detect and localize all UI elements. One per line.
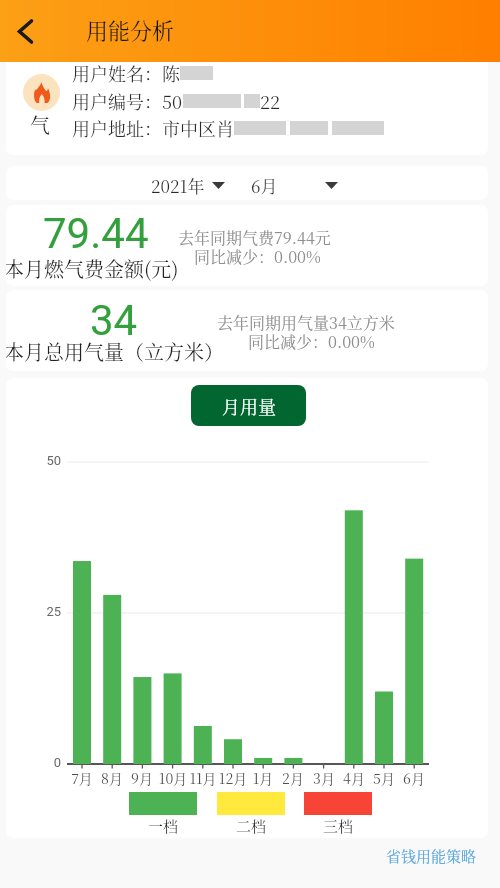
staticText: 月用量	[222, 393, 276, 419]
staticText: 本月燃气费金额(元)	[6, 254, 179, 283]
button[interactable]: 三档	[304, 792, 372, 837]
staticText: 0	[44, 755, 61, 770]
staticText: 10月	[156, 768, 190, 788]
button[interactable]: Back	[3, 9, 47, 53]
staticText: 5月	[367, 768, 401, 788]
staticText: 7月	[65, 768, 99, 788]
staticText: 8月	[95, 768, 129, 788]
button[interactable]: 2021年	[151, 173, 225, 197]
staticText: 79.44	[43, 209, 149, 258]
staticText: 本月总用气量（立方米）	[6, 337, 224, 366]
staticText: 22	[260, 88, 281, 113]
staticText: 陈	[162, 62, 180, 85]
staticText: 50	[162, 88, 183, 113]
staticText: 4月	[337, 768, 371, 788]
staticText: 6月	[251, 173, 278, 197]
button[interactable]: 月用量	[191, 385, 306, 426]
staticText: 1月	[246, 768, 280, 788]
button[interactable]: 一档	[129, 792, 197, 837]
staticText: 同比减少：0.00%	[248, 330, 375, 353]
staticText: 12月	[216, 768, 250, 788]
staticText: 用户姓名：	[72, 62, 162, 85]
staticText: 二档	[236, 815, 267, 837]
staticText: 25	[44, 604, 61, 619]
staticText: 市中区肖	[162, 115, 234, 140]
staticText: 9月	[125, 768, 159, 788]
staticText: 一档	[148, 815, 179, 837]
staticText: 50	[44, 453, 61, 468]
staticText: 2月	[276, 768, 310, 788]
staticText: 3月	[307, 768, 341, 788]
staticText: 用户地址：	[72, 115, 162, 140]
staticText: 6月	[397, 768, 431, 788]
button[interactable]: 省钱用能策略	[386, 845, 477, 867]
staticText: 三档	[323, 815, 354, 837]
staticText: 去年同期用气量34立方米	[217, 311, 395, 334]
staticText: 去年同期气费79.44元	[178, 226, 331, 249]
staticText: 用户编号：	[72, 88, 162, 113]
staticText: 用能分析	[86, 14, 175, 46]
staticText: 气	[30, 110, 50, 139]
staticText: 34	[90, 296, 138, 345]
button[interactable]: 6月	[251, 173, 338, 197]
staticText: 2021年	[151, 173, 205, 197]
button[interactable]: 二档	[217, 792, 285, 837]
staticText: 同比减少：0.00%	[194, 245, 321, 268]
staticText: 11月	[186, 768, 220, 788]
